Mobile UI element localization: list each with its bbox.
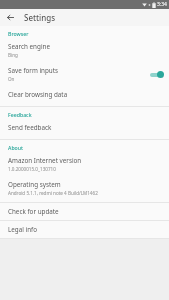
button[interactable]: Legal info	[0, 221, 169, 238]
button[interactable]: Search engine	[0, 38, 169, 62]
staticText: Bing	[8, 52, 18, 58]
button[interactable]: Check for update	[0, 203, 169, 220]
button[interactable]: Amazon Internet version	[0, 152, 169, 176]
staticText: Operating system	[8, 180, 61, 189]
staticText: Settings	[24, 12, 56, 23]
staticText: Save form inputs	[8, 66, 59, 75]
staticText: Amazon Internet version	[8, 156, 82, 165]
button[interactable]: Clear browsing data	[0, 86, 169, 103]
button[interactable]: Back	[4, 11, 17, 24]
button[interactable]: Send feedback	[0, 119, 169, 136]
staticText: 1.0.2000015.0_130710	[8, 166, 56, 172]
staticText: Legal info	[8, 225, 38, 234]
button[interactable]: Save form inputs	[0, 62, 169, 86]
staticText: Check for update	[8, 207, 59, 216]
staticText: Android 5.1.1, redmi note 4 Build/LM1462	[8, 190, 98, 196]
staticText: About	[8, 144, 24, 151]
staticText: Browser	[8, 30, 29, 37]
button[interactable]: Operating system	[0, 176, 169, 200]
staticText: 3:34	[157, 1, 167, 8]
staticText: Feedback	[8, 111, 32, 118]
staticText: Clear browsing data	[8, 90, 68, 99]
staticText: Send feedback	[8, 123, 52, 132]
staticText: Search engine	[8, 42, 50, 51]
button[interactable]: Toggle save form inputs	[148, 70, 164, 79]
staticText: On	[8, 76, 15, 82]
